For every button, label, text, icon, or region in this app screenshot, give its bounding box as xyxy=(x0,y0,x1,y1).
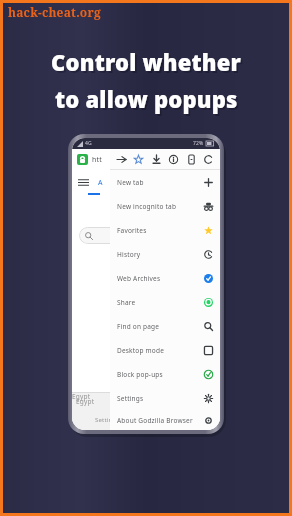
button[interactable]: Settings xyxy=(110,386,220,410)
staticText: Desktop mode xyxy=(117,346,165,355)
button[interactable]: Block pop-ups xyxy=(110,362,220,386)
button[interactable]: Secure site xyxy=(77,154,88,165)
button[interactable]: Share xyxy=(110,290,220,314)
button[interactable]: New incognito tab xyxy=(110,194,220,218)
staticText: Egypt xyxy=(72,392,91,401)
button[interactable]: Desktop mode xyxy=(110,338,220,362)
button[interactable] xyxy=(79,227,159,244)
button[interactable]: Favorites xyxy=(110,218,220,242)
staticText: About Godzilla Browser xyxy=(117,416,193,425)
staticText: hack-cheat.org xyxy=(8,4,101,20)
staticText: A xyxy=(98,178,103,188)
button[interactable]: New tab xyxy=(110,170,220,194)
staticText: to allow popups xyxy=(57,86,240,116)
button[interactable]: History xyxy=(110,242,220,266)
staticText: Control whether xyxy=(51,47,242,77)
button[interactable]: Settings xyxy=(95,416,120,424)
button[interactable]: starline xyxy=(131,152,146,167)
staticText: Terms xyxy=(178,416,197,424)
button[interactable]: tabs xyxy=(184,152,199,167)
staticText: Share xyxy=(117,298,136,307)
staticText: Find on page xyxy=(117,322,160,331)
button[interactable]: Find on page xyxy=(110,314,220,338)
staticText: History xyxy=(117,250,141,259)
button[interactable]: Terms xyxy=(178,416,197,424)
button[interactable]: About Godzilla Browser xyxy=(110,410,220,430)
staticText: New incognito tab xyxy=(117,202,177,211)
button[interactable]: Privacy xyxy=(138,416,160,424)
staticText: Control whether xyxy=(53,49,244,79)
staticText: 72% xyxy=(193,140,204,147)
button[interactable]: Web Archives xyxy=(110,266,220,290)
staticText: Settings xyxy=(117,394,144,403)
button[interactable]: info xyxy=(166,152,181,167)
staticText: Favorites xyxy=(117,226,147,235)
button[interactable]: reload xyxy=(201,152,216,167)
staticText: 4G xyxy=(85,140,92,147)
staticText: Egypt xyxy=(76,397,95,406)
staticText: to allow popups xyxy=(55,84,238,114)
staticText: Privacy xyxy=(138,416,160,424)
staticText: htt xyxy=(92,155,102,165)
staticText: Settings xyxy=(95,416,120,424)
staticText: Block pop-ups xyxy=(117,370,163,379)
staticText: New tab xyxy=(117,178,144,187)
button[interactable]: hack-cheat.org xyxy=(8,4,101,20)
staticText: Web Archives xyxy=(117,274,161,283)
button[interactable]: download xyxy=(149,152,164,167)
button[interactable]: forward xyxy=(114,152,129,167)
